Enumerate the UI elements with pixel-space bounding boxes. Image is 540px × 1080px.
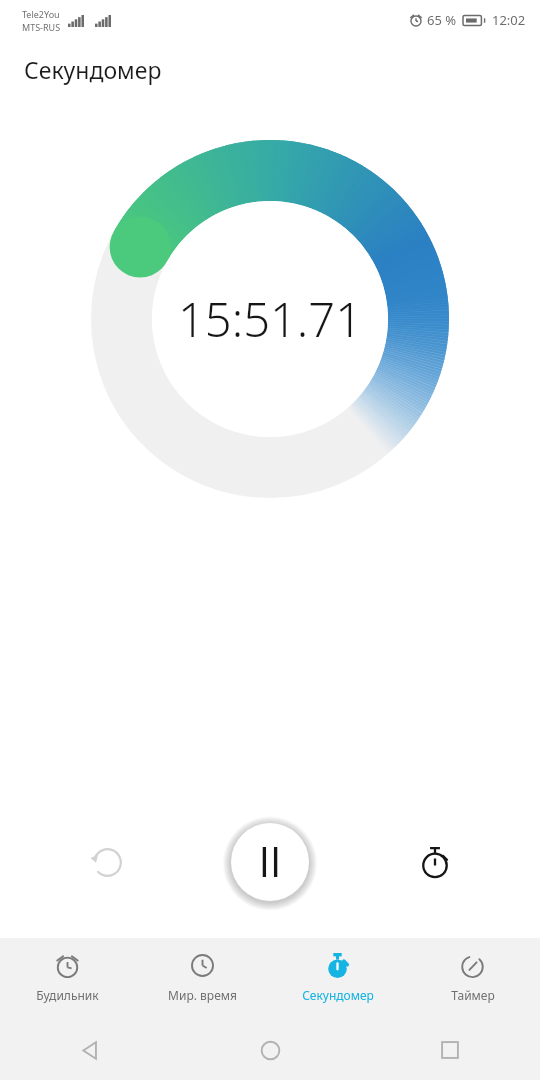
button[interactable]: Recents: [360, 1020, 540, 1080]
button[interactable]: Pause: [230, 822, 310, 902]
staticText: Секундомер: [302, 987, 374, 1003]
staticText: Будильник: [36, 987, 99, 1003]
button[interactable]: Мир. время: [135, 938, 270, 1020]
staticText: Мир. время: [168, 987, 237, 1003]
button[interactable]: Будильник: [0, 938, 135, 1020]
staticText: Таймер: [451, 987, 495, 1003]
button[interactable]: Back: [0, 1020, 180, 1080]
button[interactable]: Секундомер: [270, 938, 405, 1020]
staticText: Tele2You: [22, 8, 60, 20]
staticText: 65 %: [427, 11, 457, 29]
button[interactable]: Reset: [84, 839, 130, 885]
staticText: Секундомер: [24, 54, 162, 85]
button[interactable]: Lap: [412, 839, 458, 885]
button[interactable]: Home: [180, 1020, 360, 1080]
staticText: MTS-RUS: [22, 21, 61, 33]
button[interactable]: Таймер: [405, 938, 540, 1020]
staticText: 15:51.71: [178, 287, 362, 351]
staticText: 12:02: [492, 11, 526, 29]
